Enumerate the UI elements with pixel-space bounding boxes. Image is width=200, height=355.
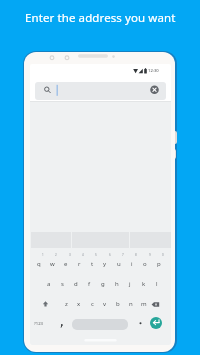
- staticText: j: [129, 280, 131, 288]
- staticText: p: [157, 260, 161, 268]
- staticText: i: [131, 260, 133, 268]
- staticText: ?123: [34, 321, 44, 327]
- staticText: r: [78, 260, 81, 268]
- button[interactable]: [150, 317, 162, 329]
- staticText: v: [103, 300, 107, 308]
- staticText: d: [74, 280, 78, 288]
- staticText: g: [101, 280, 105, 288]
- staticText: u: [117, 260, 121, 268]
- staticText: 7: [122, 253, 124, 257]
- button[interactable]: [35, 82, 166, 100]
- staticText: 5: [95, 253, 97, 257]
- staticText: z: [65, 300, 68, 308]
- staticText: s: [61, 280, 64, 288]
- staticText: h: [115, 280, 119, 288]
- staticText: 6: [109, 253, 111, 257]
- staticText: y: [103, 260, 107, 268]
- staticText: a: [47, 280, 51, 288]
- staticText: b: [116, 300, 120, 308]
- staticText: x: [77, 300, 81, 308]
- staticText: 4: [82, 253, 84, 257]
- staticText: o: [143, 260, 147, 268]
- staticText: l: [156, 280, 158, 288]
- staticText: w: [50, 260, 55, 268]
- staticText: 8: [135, 253, 137, 257]
- staticText: m: [141, 300, 147, 308]
- staticText: Enter the address you want: [25, 10, 176, 26]
- staticText: n: [129, 300, 133, 308]
- button[interactable]: Enter the address you want: [0, 0, 200, 36]
- staticText: 2: [55, 253, 57, 257]
- staticText: 0: [162, 253, 164, 257]
- staticText: 12:30: [148, 68, 159, 74]
- staticText: k: [142, 280, 146, 288]
- staticText: c: [91, 300, 94, 308]
- staticText: f: [88, 280, 91, 288]
- staticText: t: [91, 260, 94, 268]
- staticText: 1: [42, 253, 44, 257]
- staticText: e: [64, 260, 68, 268]
- button[interactable]: [72, 319, 128, 330]
- staticText: q: [37, 260, 41, 268]
- staticText: 9: [149, 253, 151, 257]
- staticText: 3: [69, 253, 71, 257]
